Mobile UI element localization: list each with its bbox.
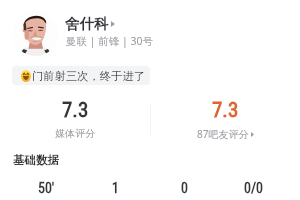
button[interactable]: 7.3: [150, 98, 300, 141]
staticText: 门前射三次，终于进了: [32, 69, 145, 83]
staticText: 1: [112, 180, 119, 196]
staticText: 曼联 | 前锋 | 30号: [66, 34, 154, 48]
staticText: 0/0: [244, 180, 264, 196]
button[interactable]: 0: [150, 180, 219, 200]
button[interactable]: 0/0: [219, 180, 288, 200]
staticText: 87吧友评分: [197, 127, 249, 141]
staticText: 7.3: [212, 98, 239, 123]
button[interactable]: 舍什科: [65, 15, 115, 33]
staticText: 舍什科: [65, 15, 109, 33]
staticText: 媒体评分: [55, 127, 95, 140]
button[interactable]: 1: [81, 180, 150, 200]
button[interactable]: Player avatar: [13, 11, 58, 56]
button[interactable]: 7.3: [0, 98, 150, 140]
staticText: 基础数据: [13, 153, 59, 167]
staticText: 0: [181, 180, 188, 196]
staticText: 50': [38, 180, 55, 196]
staticText: 7.3: [62, 98, 89, 123]
button[interactable]: 门前射三次，终于进了: [12, 66, 150, 85]
button[interactable]: 50': [12, 180, 81, 200]
